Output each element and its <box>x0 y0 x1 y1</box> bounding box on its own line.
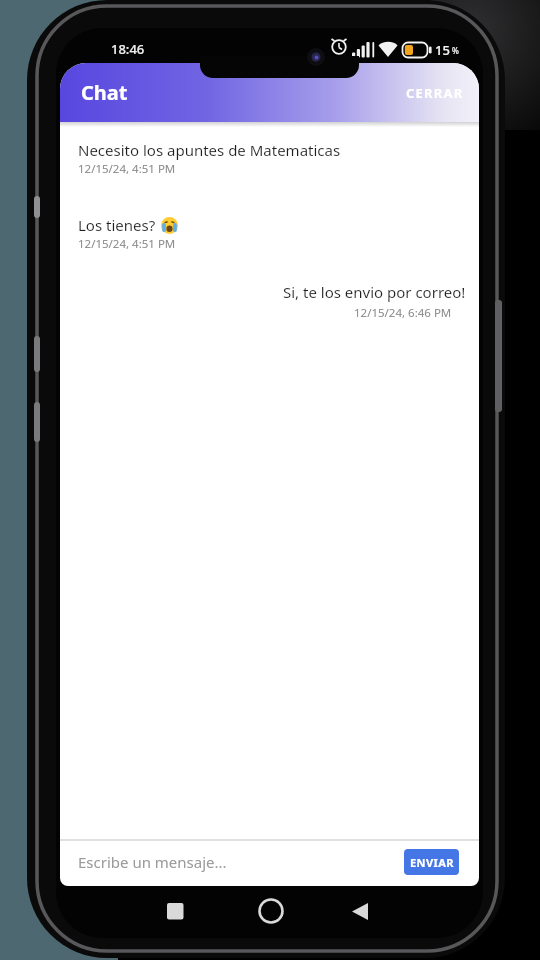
staticText: 12/15/24, 4:51 PM <box>78 161 176 177</box>
staticText: ENVIAR <box>410 855 454 870</box>
staticText: Escribe un mensaje... <box>78 852 227 872</box>
staticText: CERRAR <box>406 84 464 102</box>
staticText: 15 <box>435 41 450 59</box>
staticText: 12/15/24, 4:51 PM <box>78 236 176 252</box>
staticText: Chat <box>81 79 128 106</box>
staticText: Necesito los apuntes de Matematicas <box>78 140 341 160</box>
staticText: % <box>452 45 459 56</box>
button[interactable]: CERRAR <box>402 80 468 106</box>
button[interactable]: Escribe un mensaje... <box>60 841 479 886</box>
button[interactable]: ENVIAR <box>404 849 459 875</box>
staticText: Los tienes? <box>78 215 156 235</box>
staticText: 12/15/24, 6:46 PM <box>354 305 452 321</box>
staticText: 18:46 <box>111 40 145 58</box>
staticText: Si, te los envio por correo! <box>283 282 466 302</box>
